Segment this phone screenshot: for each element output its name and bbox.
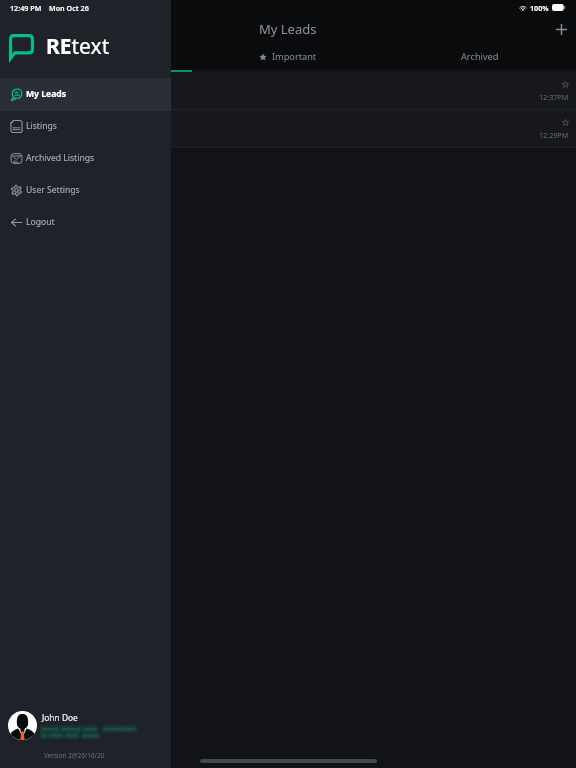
button[interactable]: Logout (0, 207, 171, 239)
button[interactable]: Add lead (546, 15, 576, 43)
button[interactable]: Mark important (171, 72, 576, 110)
staticText: Logout (26, 216, 55, 228)
staticText: Important (272, 50, 317, 63)
staticText: Archived (461, 50, 499, 63)
button[interactable]: Archived (405, 43, 555, 70)
staticText: 100% (530, 3, 549, 13)
button[interactable]: Listings (0, 111, 171, 143)
staticText: My Leads (26, 88, 67, 100)
staticText: 12:29PM (539, 130, 569, 140)
button[interactable]: John Doe (0, 711, 171, 740)
staticText: Listings (26, 120, 57, 132)
button[interactable]: Important (171, 43, 405, 70)
staticText: John Doe (42, 712, 78, 723)
staticText: REtext (46, 32, 110, 61)
button[interactable]: User Settings (0, 175, 171, 207)
staticText: 12:49 PM (10, 3, 42, 13)
button[interactable]: Mark important (171, 110, 576, 148)
button[interactable]: Archived Listings (0, 143, 171, 175)
staticText: Version 2@26/10/20 (44, 751, 105, 760)
staticText: User Settings (26, 184, 80, 196)
button[interactable]: Mark important (562, 119, 569, 126)
staticText: Mon Oct 26 (49, 3, 89, 13)
staticText: Archived Listings (26, 152, 95, 164)
staticText: 12:37PM (539, 92, 569, 102)
staticText: My Leads (259, 20, 317, 38)
button[interactable]: My Leads (0, 79, 171, 111)
button[interactable]: Mark important (562, 81, 569, 88)
